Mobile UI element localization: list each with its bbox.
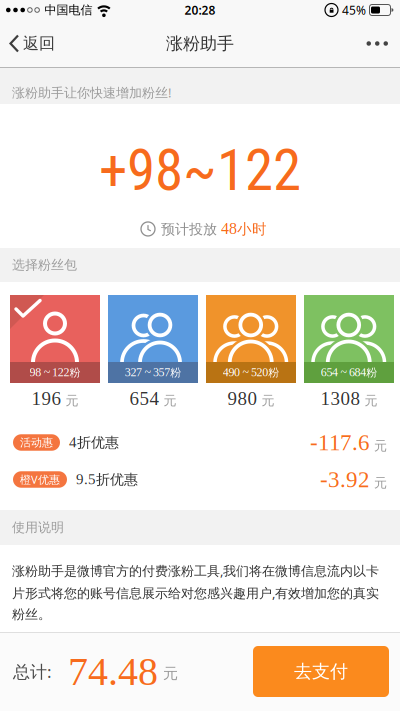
staticText: 196 bbox=[31, 388, 61, 409]
staticText: 使用说明 bbox=[12, 519, 64, 535]
staticText: 折优惠 bbox=[77, 434, 119, 451]
staticText: 小时 bbox=[237, 220, 267, 238]
staticText: -117.6 bbox=[310, 430, 370, 455]
staticText: 活动惠 bbox=[20, 436, 53, 449]
staticText: 98 ~ 122 bbox=[29, 366, 69, 379]
staticText: 粉 bbox=[170, 366, 181, 379]
staticText: 490 ~ 520 bbox=[223, 366, 268, 379]
staticText: 涨粉助手让你快速增加粉丝! bbox=[12, 84, 171, 101]
staticText: 元 bbox=[65, 393, 78, 409]
staticText: 9.5 bbox=[76, 471, 96, 487]
button[interactable]: 654 ~ 684粉 bbox=[304, 295, 394, 383]
staticText: 654 ~ 684 bbox=[321, 366, 366, 379]
staticText: 4 bbox=[69, 434, 77, 450]
staticText: 返回 bbox=[23, 34, 55, 53]
staticText: 327 ~ 357 bbox=[125, 366, 170, 379]
staticText: 涨粉助手 bbox=[166, 33, 234, 54]
staticText: 预计投放 bbox=[161, 221, 221, 238]
staticText: 元 bbox=[364, 393, 377, 409]
staticText: 中国电信 bbox=[44, 3, 92, 17]
staticText: 元 bbox=[261, 393, 274, 409]
staticText: 48 bbox=[221, 220, 237, 237]
staticText: +98~122 bbox=[99, 137, 301, 204]
button[interactable]: 返回 bbox=[0, 20, 55, 67]
staticText: 元 bbox=[163, 664, 178, 683]
button[interactable]: 98 ~ 122粉 bbox=[10, 295, 100, 383]
staticText: 元 bbox=[374, 438, 387, 454]
staticText: 橙V优惠 bbox=[20, 472, 60, 487]
staticText: 总计: bbox=[13, 660, 52, 683]
staticText: 粉 bbox=[69, 366, 80, 379]
button[interactable]: 去支付 bbox=[253, 646, 389, 697]
staticText: 1308 bbox=[320, 388, 360, 409]
button[interactable]: 490 ~ 520粉 bbox=[206, 295, 296, 383]
staticText: 20:28 bbox=[184, 2, 215, 18]
button[interactable]: 327 ~ 357粉 bbox=[108, 295, 198, 383]
staticText: 粉 bbox=[268, 366, 279, 379]
staticText: 折优惠 bbox=[96, 471, 138, 488]
staticText: 654 bbox=[129, 388, 159, 409]
staticText: 元 bbox=[374, 475, 387, 491]
staticText: 980 bbox=[227, 388, 257, 409]
staticText: 选择粉丝包 bbox=[12, 257, 77, 273]
staticText: -3.92 bbox=[320, 467, 370, 492]
staticText: 涨粉助手是微博官方的付费涨粉工具,我们将在微博信息流内以卡 片形式将您的账号信息… bbox=[12, 562, 379, 622]
staticText: 45% bbox=[342, 2, 366, 18]
staticText: 粉 bbox=[366, 366, 377, 379]
staticText: 74.48 bbox=[68, 649, 158, 694]
button[interactable]: 更多 bbox=[354, 20, 400, 67]
staticText: 元 bbox=[163, 393, 176, 409]
staticText: 去支付 bbox=[294, 660, 348, 682]
